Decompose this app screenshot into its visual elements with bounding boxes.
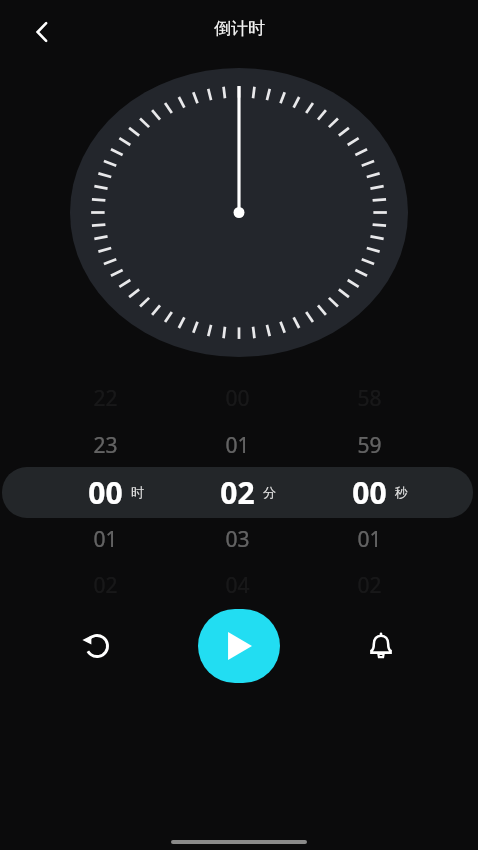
button[interactable]: 01: [70, 523, 140, 555]
button[interactable]: Ringtone: [350, 615, 412, 677]
button[interactable]: 03: [202, 523, 272, 555]
button[interactable]: 01: [334, 523, 404, 555]
button[interactable]: Start: [198, 609, 280, 683]
button[interactable]: 01: [202, 429, 272, 461]
button[interactable]: 59: [334, 429, 404, 461]
staticText: 分: [263, 484, 276, 500]
staticText: 00: [88, 472, 123, 513]
staticText: 01: [93, 525, 118, 554]
staticText: 04: [225, 571, 250, 600]
button[interactable]: 02: [202, 470, 272, 514]
button[interactable]: [2, 467, 473, 518]
button[interactable]: 23: [70, 429, 140, 461]
staticText: 02: [93, 571, 118, 600]
staticText: 03: [225, 525, 250, 554]
staticText: 01: [357, 525, 382, 554]
staticText: 时: [131, 484, 144, 500]
button[interactable]: Back: [18, 8, 66, 56]
staticText: 23: [93, 431, 118, 460]
staticText: 01: [225, 431, 250, 460]
button[interactable]: 00: [334, 470, 404, 514]
staticText: 58: [357, 384, 382, 413]
staticText: 02: [357, 571, 382, 600]
staticText: 秒: [395, 484, 408, 500]
button[interactable]: Reset: [66, 615, 128, 677]
staticText: 00: [352, 472, 387, 513]
staticText: 00: [225, 384, 250, 413]
staticText: 02: [220, 472, 255, 513]
button[interactable]: 00: [70, 470, 140, 514]
staticText: 22: [93, 384, 118, 413]
staticText: 倒计时: [214, 18, 265, 39]
staticText: 59: [357, 431, 382, 460]
